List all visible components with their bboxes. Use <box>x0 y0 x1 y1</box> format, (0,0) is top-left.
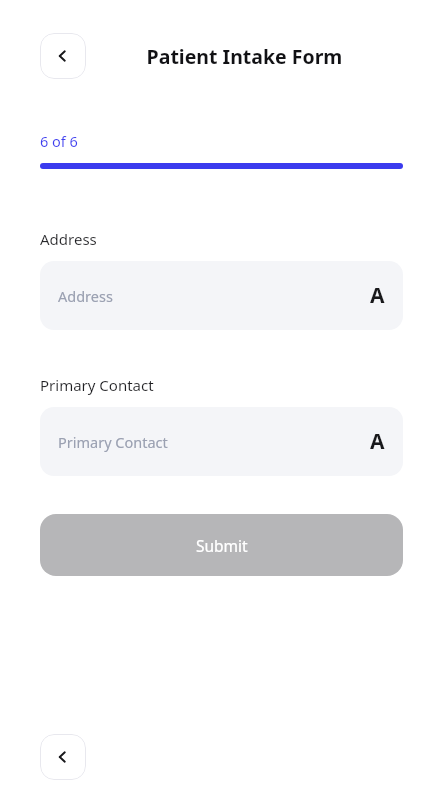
staticText: A <box>370 281 385 310</box>
button[interactable]: Primary Contact <box>40 407 403 476</box>
staticText: Primary Contact <box>40 375 154 395</box>
staticText: A <box>370 427 385 456</box>
staticText: Submit <box>196 535 248 556</box>
staticText: Patient Intake Form <box>86 43 403 70</box>
button[interactable]: Submit <box>40 514 403 576</box>
button[interactable]: Back <box>40 734 86 780</box>
button[interactable]: Address <box>40 261 403 330</box>
staticText: Primary Contact <box>58 432 370 452</box>
staticText: 6 of 6 <box>40 131 78 151</box>
staticText: Address <box>58 286 370 306</box>
button[interactable]: Back <box>40 33 86 79</box>
staticText: Address <box>40 229 97 249</box>
